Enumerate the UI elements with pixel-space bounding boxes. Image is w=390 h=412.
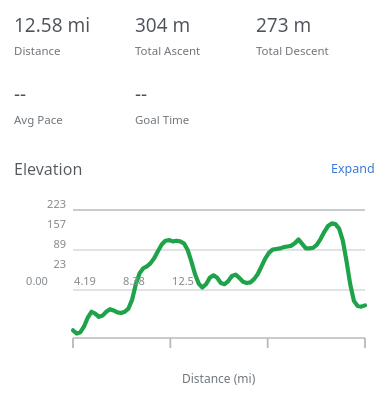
staticText: --: [135, 81, 148, 107]
staticText: 89: [0, 236, 66, 251]
staticText: 23: [0, 256, 66, 271]
staticText: 12.58 mi: [14, 12, 91, 38]
staticText: Distance: [14, 43, 61, 59]
staticText: Total Ascent: [135, 43, 201, 59]
staticText: Distance (mi): [182, 370, 256, 386]
staticText: 157: [0, 216, 66, 231]
staticText: 4.19: [70, 273, 100, 288]
staticText: 223: [0, 196, 66, 211]
staticText: 12.5: [168, 273, 198, 288]
staticText: Goal Time: [135, 112, 190, 128]
button[interactable]: --: [135, 81, 256, 128]
button[interactable]: 273 m: [256, 12, 377, 59]
staticText: 273 m: [256, 12, 312, 38]
other: Elevation chart: [0, 195, 390, 370]
button[interactable]: Expand: [329, 156, 377, 181]
staticText: --: [14, 81, 27, 107]
staticText: Avg Pace: [14, 112, 63, 128]
staticText: Elevation: [14, 158, 83, 180]
button[interactable]: --: [14, 81, 135, 128]
staticText: 304 m: [135, 12, 191, 38]
button[interactable]: 12.58 mi: [14, 12, 135, 59]
staticText: 8.38: [119, 273, 149, 288]
staticText: Expand: [331, 160, 375, 177]
button[interactable]: 304 m: [135, 12, 256, 59]
staticText: 0.00: [22, 273, 52, 288]
staticText: Total Descent: [256, 43, 329, 59]
